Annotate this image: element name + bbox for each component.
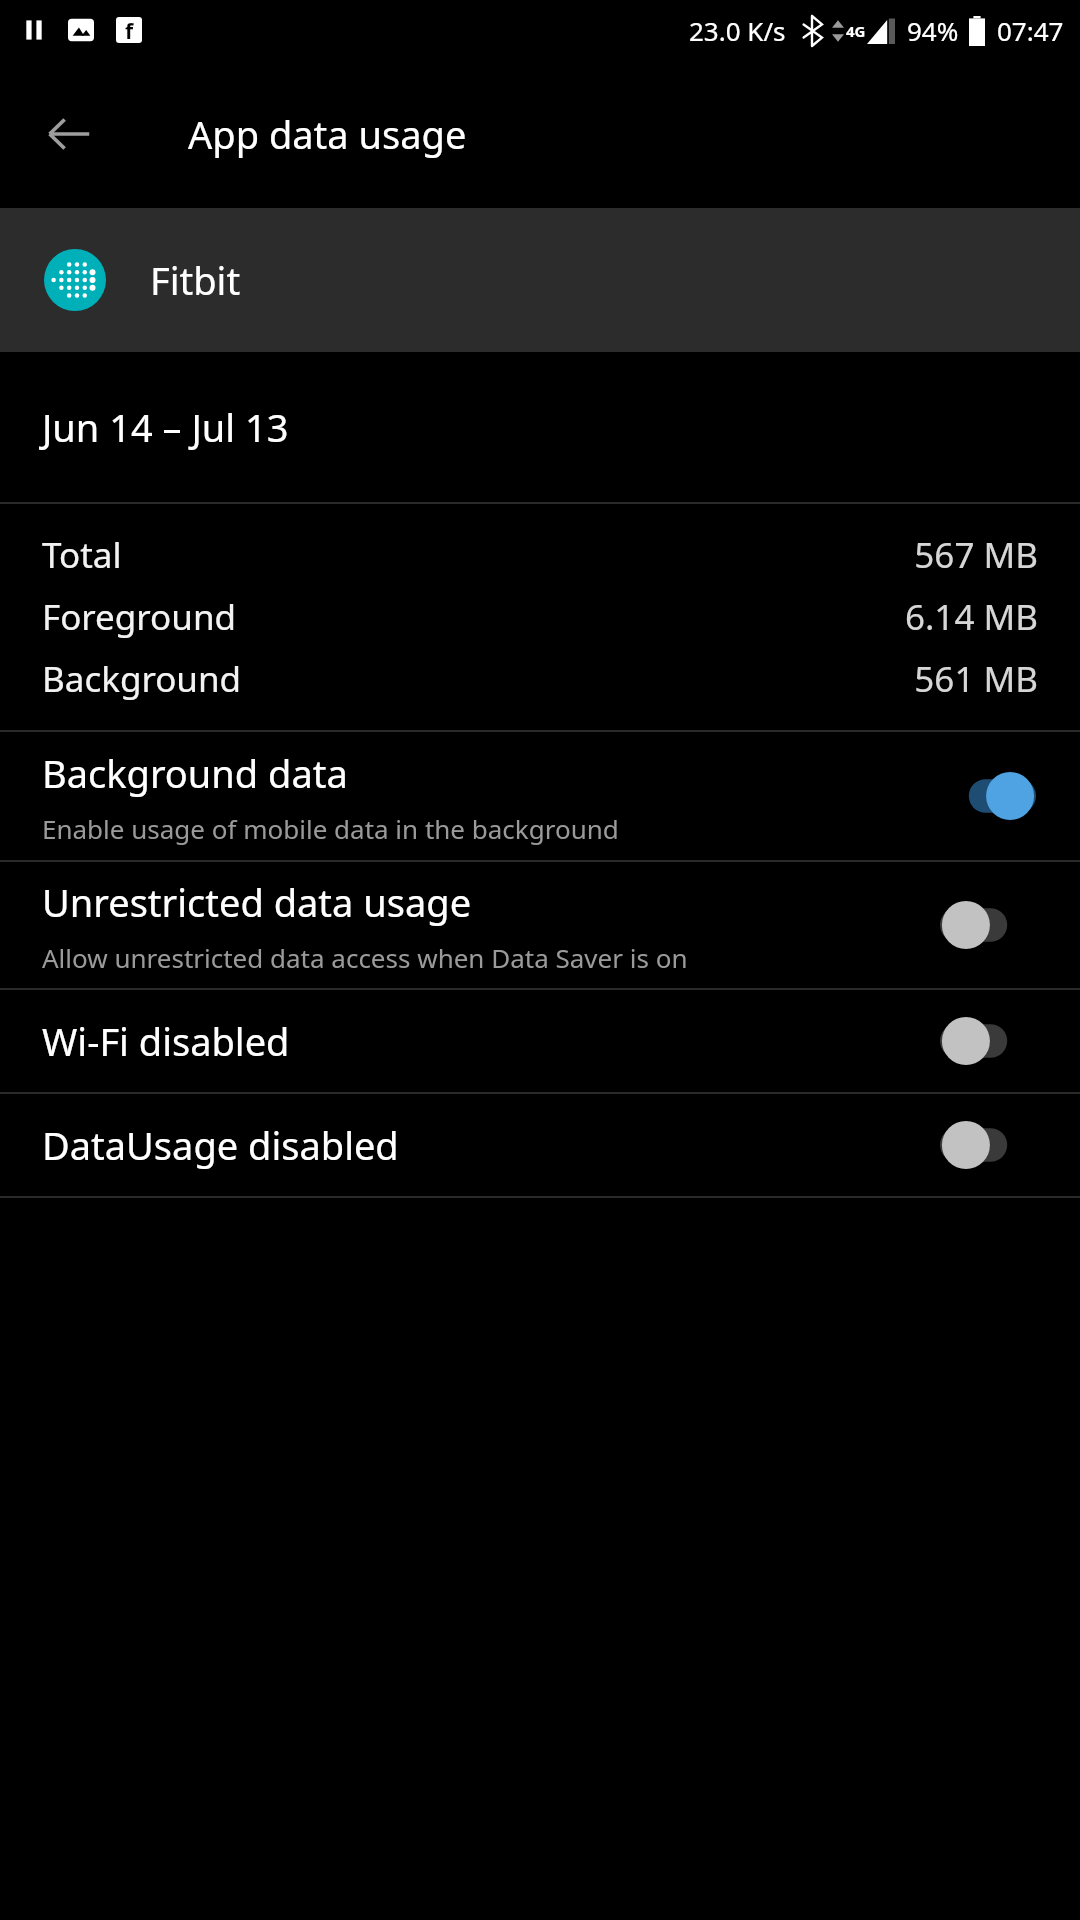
staticText: 4G (846, 21, 866, 41)
staticText: Background (42, 655, 242, 703)
staticText: 6.14 MB (904, 593, 1038, 641)
staticText: 561 MB (914, 655, 1038, 703)
staticText: Enable usage of mobile data in the backg… (42, 811, 619, 846)
button[interactable]: DataUsage disabled (0, 1094, 1080, 1196)
button[interactable]: Fitbit (0, 208, 1080, 352)
button[interactable]: Toggle on (940, 766, 1036, 826)
button[interactable]: Back (30, 95, 108, 173)
button[interactable]: Toggle off (940, 895, 1036, 955)
staticText: 94% (907, 13, 959, 48)
staticText: App data usage (188, 108, 467, 160)
button[interactable]: Unrestricted data usage (0, 862, 1080, 988)
staticText: Wi-Fi disabled (42, 1015, 290, 1067)
staticText: Background data (42, 747, 348, 799)
staticText: Unrestricted data usage (42, 876, 472, 928)
staticText: Fitbit (150, 254, 241, 306)
button[interactable]: Background data (0, 732, 1080, 860)
staticText: DataUsage disabled (42, 1119, 399, 1171)
staticText: 07:47 (997, 13, 1064, 48)
button[interactable]: Toggle off (940, 1115, 1036, 1175)
staticText: 567 MB (914, 531, 1038, 579)
button[interactable]: Toggle off (940, 1011, 1036, 1071)
staticText: f (125, 17, 134, 43)
staticText: Jun 14 – Jul 13 (42, 401, 289, 453)
staticText: Foreground (42, 593, 237, 641)
staticText: 23.0 K/s (689, 13, 786, 48)
staticText: Allow unrestricted data access when Data… (42, 940, 688, 975)
staticText: Total (42, 531, 122, 579)
button[interactable]: Wi-Fi disabled (0, 990, 1080, 1092)
